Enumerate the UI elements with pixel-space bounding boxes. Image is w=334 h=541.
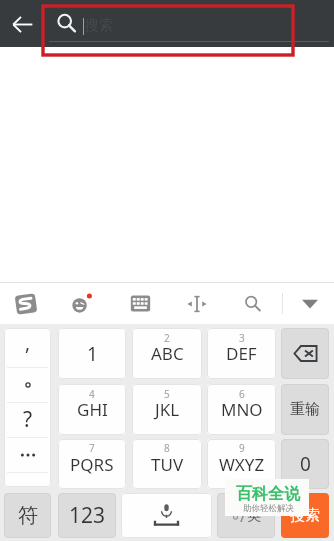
staticText: WXYZ xyxy=(219,453,265,476)
button[interactable]: 搜索 xyxy=(281,493,329,538)
button[interactable]: 8 xyxy=(132,439,202,489)
button[interactable]: 重输 xyxy=(281,384,329,435)
button[interactable]: 搜索 xyxy=(44,2,334,46)
button[interactable]: 9 xyxy=(207,439,276,489)
button[interactable] xyxy=(4,437,51,473)
staticText: 搜索 xyxy=(290,506,320,525)
staticText: GHI xyxy=(77,398,108,421)
staticText: PQRS xyxy=(70,453,114,476)
staticText: ? xyxy=(23,405,33,434)
button[interactable]: Emoji xyxy=(54,283,108,324)
button[interactable]: 6 xyxy=(207,384,276,435)
staticText: 6 xyxy=(239,387,245,401)
staticText: ABC xyxy=(151,342,184,365)
staticText: DEF xyxy=(226,342,257,365)
button[interactable]: 3 xyxy=(207,328,276,379)
button[interactable]: Move cursor xyxy=(170,283,224,324)
button[interactable]: 0 xyxy=(281,439,329,489)
staticText: 搜索 xyxy=(85,17,113,35)
button[interactable]: 2 xyxy=(132,328,202,379)
staticText: JKL xyxy=(155,398,180,421)
staticText: 2 xyxy=(164,331,170,345)
staticText: 7 xyxy=(89,441,95,455)
staticText: 3 xyxy=(239,331,245,345)
staticText: TUV xyxy=(151,453,184,476)
staticText: , xyxy=(25,330,31,356)
staticText: 重输 xyxy=(290,400,320,419)
button[interactable]: 5 xyxy=(132,384,202,435)
staticText: 4 xyxy=(89,387,95,401)
staticText: 助你轻松解决 xyxy=(243,503,294,514)
button[interactable]: , xyxy=(4,328,51,367)
staticText: 百科全说 xyxy=(236,484,300,504)
staticText: 符 xyxy=(18,503,38,528)
button[interactable]: ? xyxy=(4,402,51,437)
button[interactable]: Space xyxy=(121,493,212,538)
button[interactable]: Search xyxy=(226,283,280,324)
staticText: / xyxy=(240,504,247,527)
button[interactable]: / xyxy=(217,493,275,538)
button[interactable]: 123 xyxy=(58,493,116,538)
staticText: 1 xyxy=(87,341,98,367)
button[interactable]: Sogou input xyxy=(0,283,53,324)
button[interactable]: Keyboard layout xyxy=(113,283,167,324)
staticText: 5 xyxy=(164,387,170,401)
staticText: 8 xyxy=(164,441,170,455)
button[interactable]: 4 xyxy=(58,384,126,435)
staticText: 123 xyxy=(69,501,106,530)
button[interactable]: 符 xyxy=(4,493,51,538)
button[interactable] xyxy=(4,367,51,402)
button[interactable]: Hide keyboard xyxy=(283,283,334,324)
staticText: 9 xyxy=(239,441,245,455)
staticText: 0 xyxy=(300,451,311,477)
button[interactable]: Back xyxy=(0,4,44,44)
staticText: MNO xyxy=(221,398,263,421)
button[interactable]: Backspace xyxy=(281,328,329,379)
button[interactable]: 1 xyxy=(58,328,126,379)
button[interactable]: 7 xyxy=(58,439,126,489)
staticText: 英 xyxy=(247,507,261,525)
